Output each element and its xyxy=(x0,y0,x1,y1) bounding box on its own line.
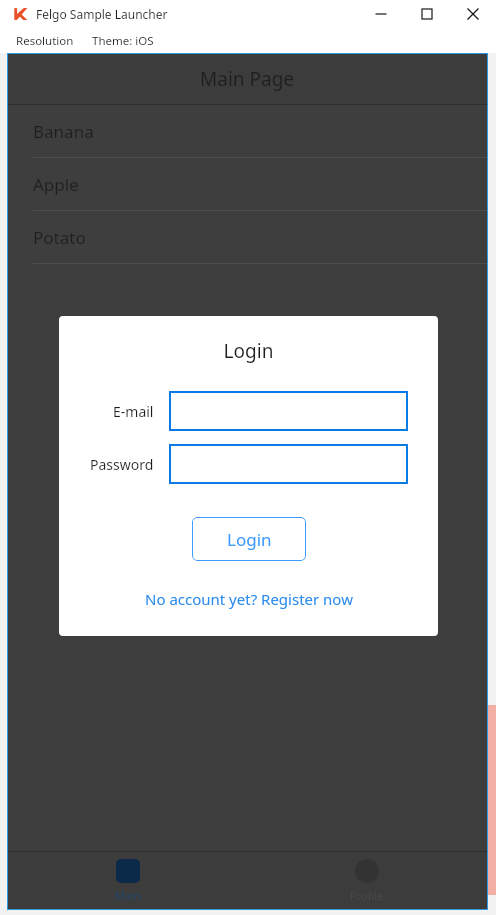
staticText: Potato xyxy=(33,226,86,249)
button[interactable]: Close xyxy=(450,0,496,28)
button[interactable] xyxy=(169,444,408,484)
staticText: Main Page xyxy=(200,66,295,92)
button[interactable]: Maximize xyxy=(404,0,450,28)
staticText: Banana xyxy=(33,120,94,143)
staticText: E-mail xyxy=(113,402,154,421)
staticText: Login xyxy=(59,338,438,364)
staticText: Theme: iOS xyxy=(92,33,154,49)
staticText: Password xyxy=(90,455,154,474)
staticText: Login xyxy=(227,528,272,551)
staticText: No account yet? Register now xyxy=(145,589,353,609)
staticText: Profile xyxy=(350,888,384,903)
button[interactable] xyxy=(169,391,408,431)
button[interactable]: Minimize xyxy=(358,0,404,28)
button[interactable]: Resolution xyxy=(14,30,76,52)
button[interactable]: Theme: iOS xyxy=(90,30,156,52)
button[interactable]: Main xyxy=(8,852,247,909)
staticText: Felgo Sample Launcher xyxy=(36,6,168,22)
button[interactable]: Login xyxy=(192,517,306,561)
button[interactable]: No account yet? Register now xyxy=(139,586,359,612)
staticText: Resolution xyxy=(16,33,74,49)
staticText: Main xyxy=(115,888,141,903)
staticText: Apple xyxy=(33,173,79,196)
